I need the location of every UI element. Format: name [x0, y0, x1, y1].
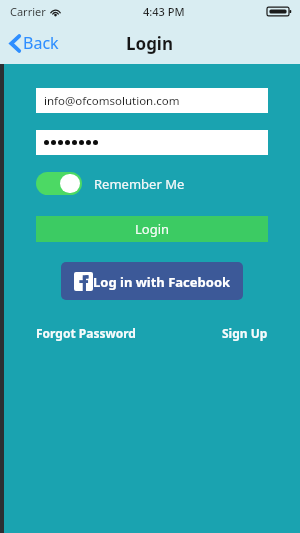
staticText: Carrier	[10, 4, 46, 19]
staticText: info@ofcomsolution.com	[44, 93, 180, 109]
button[interactable]: Remember Me	[36, 170, 185, 197]
button[interactable]: Log in with Facebook	[61, 262, 243, 300]
staticText: Login	[135, 220, 170, 238]
button[interactable]: Forgot Password	[36, 322, 136, 344]
staticText: Log in with Facebook	[93, 273, 231, 291]
staticText: Login	[126, 32, 174, 55]
button[interactable]: info@ofcomsolution.com	[36, 88, 268, 113]
staticText: 4:43 PM	[143, 4, 185, 19]
button[interactable]: Login	[36, 216, 268, 242]
staticText: Sign Up	[222, 325, 268, 341]
button[interactable]: Sign Up	[222, 322, 268, 344]
button[interactable]	[36, 130, 268, 155]
staticText: Remember Me	[94, 175, 185, 193]
staticText: Back	[23, 32, 59, 54]
staticText: Forgot Password	[36, 325, 136, 341]
button[interactable]: Back	[6, 28, 63, 58]
